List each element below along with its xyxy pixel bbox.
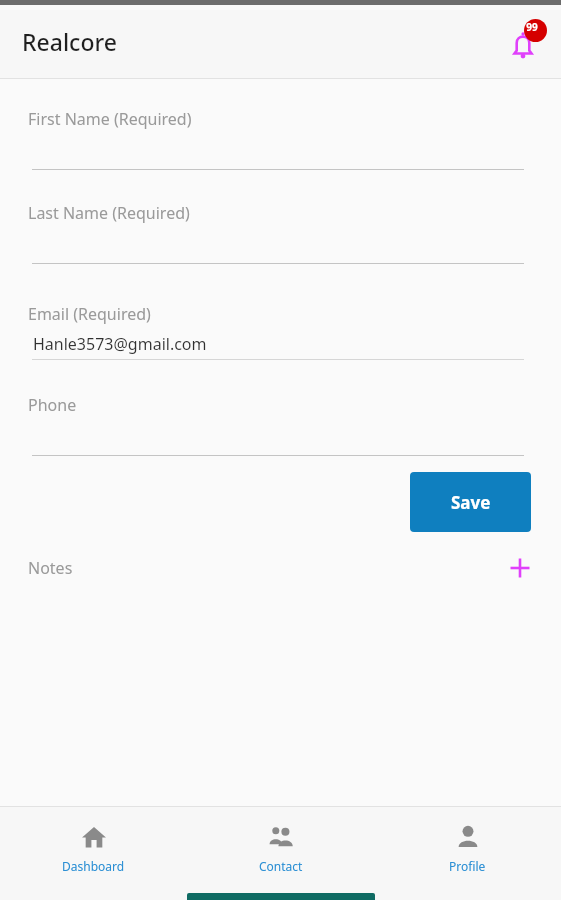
staticText: First Name (Required) [28,108,192,130]
button[interactable]: Contact [187,824,374,884]
staticText: Contact [259,858,303,874]
staticText: Profile [449,858,486,874]
staticText: 99 [520,20,544,34]
staticText: Phone [28,394,77,416]
staticText: Last Name (Required) [28,202,190,224]
button[interactable]: Phone [0,394,561,456]
staticText: Dashboard [62,858,125,874]
button[interactable]: Add note [505,553,535,583]
button[interactable]: First Name (Required) [0,108,561,170]
button[interactable]: Save [410,472,531,532]
button[interactable]: Notes [0,547,561,589]
staticText: Notes [28,557,73,579]
staticText: Hanle3573@gmail.com [33,333,207,355]
staticText: Realcore [22,26,117,57]
button[interactable]: Notifications, 99 unread [499,18,547,66]
button[interactable]: Last Name (Required) [0,202,561,264]
button[interactable]: Profile [374,824,561,884]
staticText: Email (Required) [28,303,151,325]
button[interactable]: Email (Required) [0,303,561,360]
staticText: Save [451,491,491,514]
button[interactable]: Dashboard [0,824,187,884]
